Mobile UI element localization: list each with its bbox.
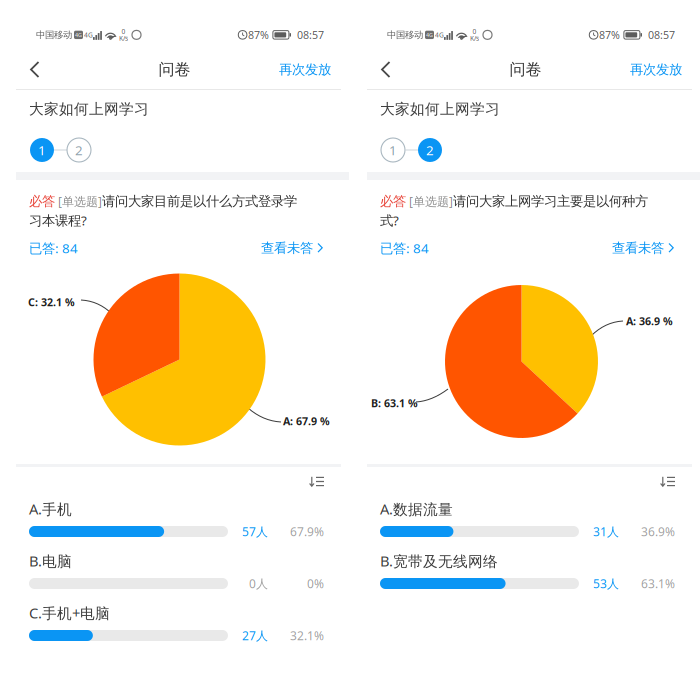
staticText: 已答: 84 xyxy=(29,239,78,257)
staticText: 0 xyxy=(472,27,476,36)
button[interactable]: 再次发放 xyxy=(630,50,700,89)
staticText: K/s xyxy=(119,34,128,43)
button[interactable]: 再次发放 xyxy=(279,50,349,89)
staticText: 大家如何上网学习 xyxy=(29,100,149,118)
staticText: 31人 xyxy=(593,523,619,539)
staticText: 36.9% xyxy=(641,523,675,539)
staticText: 1 xyxy=(38,141,46,159)
button[interactable]: 查看未答 xyxy=(612,240,675,256)
staticText: 1 xyxy=(389,141,397,159)
staticText: 67.9% xyxy=(290,523,324,539)
staticText: 必答 [单选题]请问大家上网学习主要是以何种方式? xyxy=(380,193,648,229)
staticText: 已答: 84 xyxy=(380,239,429,257)
staticText: 查看未答 xyxy=(261,240,313,256)
staticText: 0% xyxy=(307,575,324,591)
staticText: 32.1% xyxy=(290,627,324,643)
staticText: A: 36.9 % xyxy=(626,314,673,328)
staticText: 问卷 xyxy=(509,60,541,79)
staticText: 大家如何上网学习 xyxy=(380,100,500,118)
staticText: 87% xyxy=(248,28,269,42)
button[interactable]: Sort xyxy=(0,467,349,496)
staticText: 87% xyxy=(599,28,620,42)
staticText: 中国移动 xyxy=(387,29,423,41)
staticText: 再次发放 xyxy=(630,61,682,78)
staticText: 中国移动 xyxy=(36,29,72,41)
staticText: 0 xyxy=(121,27,125,36)
staticText: 4G xyxy=(84,30,93,39)
staticText: 问卷 xyxy=(158,60,190,79)
staticText: A.手机 xyxy=(29,499,72,519)
button[interactable]: Back xyxy=(0,50,69,89)
staticText: C: 32.1 % xyxy=(28,295,75,309)
staticText: K/s xyxy=(470,34,479,43)
staticText: A.数据流量 xyxy=(380,499,453,519)
staticText: 4G xyxy=(75,31,82,38)
staticText: 08:57 xyxy=(297,28,324,42)
staticText: 53人 xyxy=(593,575,619,591)
button[interactable]: 查看未答 xyxy=(261,240,324,256)
staticText: 必答 [单选题]请问大家目前是以什么方式登录学习本课程? xyxy=(29,193,297,229)
staticText: B: 63.1 % xyxy=(371,396,418,410)
staticText: 27人 xyxy=(242,627,268,643)
staticText: 63.1% xyxy=(641,575,675,591)
staticText: 查看未答 xyxy=(612,240,664,256)
staticText: A: 67.9 % xyxy=(283,414,330,428)
staticText: 08:57 xyxy=(648,28,675,42)
staticText: B.电脑 xyxy=(29,551,72,571)
button[interactable]: Sort xyxy=(351,467,700,496)
staticText: 再次发放 xyxy=(279,61,331,78)
staticText: C.手机+电脑 xyxy=(29,603,110,623)
staticText: 2 xyxy=(75,141,83,159)
staticText: 2 xyxy=(426,141,434,159)
staticText: 57人 xyxy=(242,523,268,539)
staticText: 4G xyxy=(426,31,433,38)
staticText: 0人 xyxy=(249,575,268,591)
staticText: 4G xyxy=(435,30,444,39)
staticText: B.宽带及无线网络 xyxy=(380,551,498,571)
button[interactable]: Back xyxy=(351,50,420,89)
